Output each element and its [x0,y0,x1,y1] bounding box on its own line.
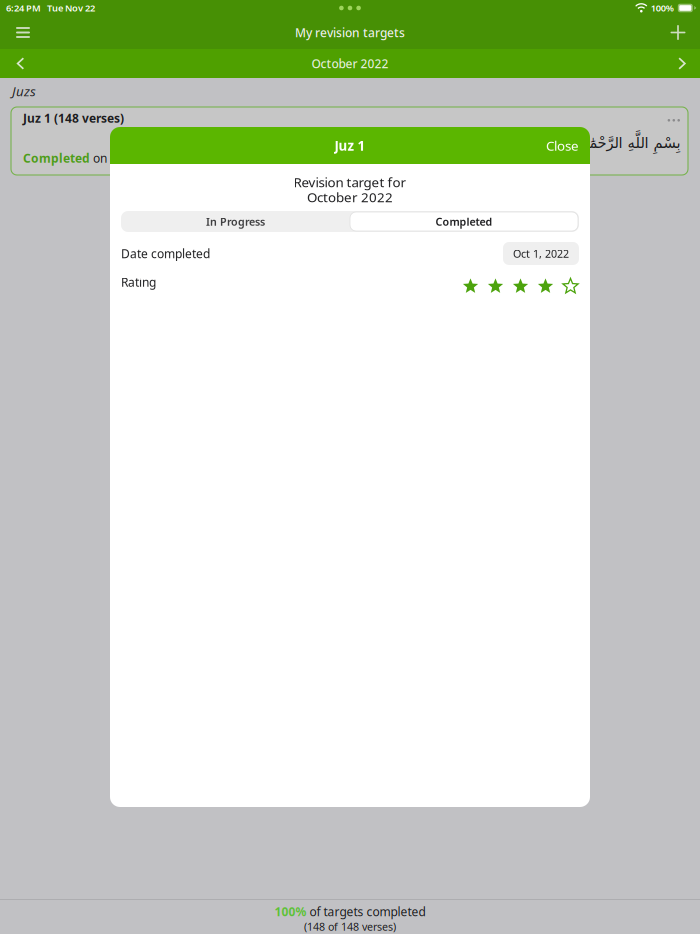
button[interactable]: Rate 4 stars [537,278,554,294]
staticText: Date completed [121,245,210,261]
staticText: Juzs [12,82,36,100]
staticText: Completed [23,150,90,166]
button[interactable]: Rate 3 stars [512,278,529,294]
staticText: 6:24 PM [6,2,41,14]
staticText: Tue Nov 22 [47,2,95,14]
button[interactable]: Menu [3,16,43,49]
staticText: Revision target for [293,173,406,191]
staticText: Rating [121,274,156,290]
staticText: 100% [651,2,674,14]
button[interactable]: Completed [350,211,579,232]
button[interactable]: Rate 1 star [462,278,479,294]
staticText: October 2022 [307,188,393,206]
staticText: 100% [274,903,306,919]
staticText: Oct 1, 2022 [513,246,569,261]
staticText: Juz 1 (148 verses) [23,110,124,126]
button[interactable]: In Progress [121,211,350,232]
button[interactable]: Previous month [2,49,39,78]
staticText: Close [546,137,579,154]
button[interactable]: Add revision target [658,16,698,49]
staticText: بِسْمِ اللَّهِ الرَّحْمَٰنِ الرَّ [557,135,680,151]
button[interactable]: Rate 5 stars [562,278,579,294]
staticText: My revision targets [295,24,405,40]
button[interactable]: Close [532,127,590,164]
staticText: (148 of 148 verses) [304,919,396,934]
staticText: Completed [435,214,492,229]
staticText: In Progress [206,214,265,229]
staticText: of targets completed [306,903,425,919]
staticText: Juz 1 [334,137,365,154]
button[interactable]: Oct 1, 2022 [503,242,579,265]
staticText: October 2022 [311,55,388,71]
button[interactable]: Next month [667,49,697,78]
staticText: on Sa [90,150,124,166]
button[interactable]: Rate 2 stars [487,278,504,294]
button[interactable]: Juz 1 (148 verses) [11,107,688,175]
